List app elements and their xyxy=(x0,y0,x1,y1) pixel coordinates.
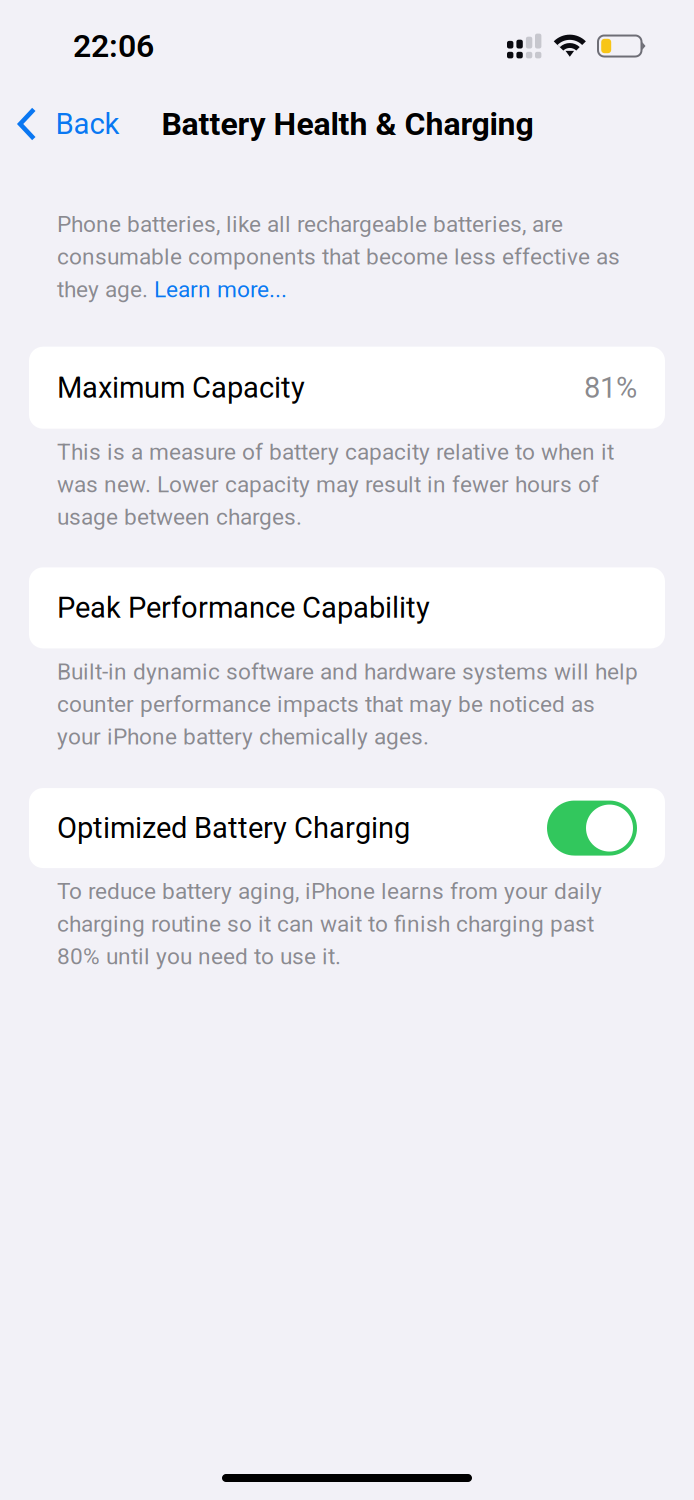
button[interactable]: Back xyxy=(17,100,119,148)
staticText: Peak Performance Capability xyxy=(57,591,430,625)
staticText: This is a measure of battery capacity re… xyxy=(57,439,614,530)
staticText: 81% xyxy=(584,371,637,405)
button[interactable]: Optimized Battery Charging, on xyxy=(547,801,637,856)
staticText: Battery Health & Charging xyxy=(161,105,533,143)
button[interactable]: Peak Performance Capability xyxy=(29,567,665,648)
staticText: To reduce battery aging, iPhone learns f… xyxy=(57,878,602,970)
staticText: Optimized Battery Charging xyxy=(57,811,410,845)
staticText: Maximum Capacity xyxy=(57,371,305,405)
staticText: Back xyxy=(55,107,119,141)
staticText: Phone batteries, like all rechargeable b… xyxy=(57,211,620,303)
staticText: 22:06 xyxy=(73,27,154,65)
staticText: Built-in dynamic software and hardware s… xyxy=(57,658,638,750)
